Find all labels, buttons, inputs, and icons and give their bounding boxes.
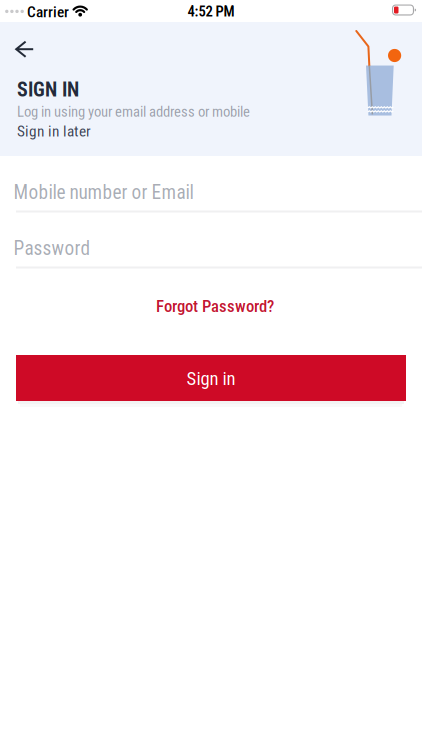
- staticText: Password: [13, 237, 90, 260]
- staticText: Sign in: [186, 368, 235, 389]
- button[interactable]: Sign in later: [17, 122, 91, 140]
- button[interactable]: Back: [3, 32, 37, 66]
- staticText: Forgot Password?: [156, 296, 274, 316]
- button[interactable]: Sign in: [16, 355, 406, 401]
- staticText: SIGN IN: [17, 78, 79, 101]
- button[interactable]: Forgot Password?: [156, 296, 274, 316]
- staticText: Mobile number or Email: [13, 181, 193, 204]
- staticText: Sign in later: [17, 122, 91, 140]
- staticText: 4:52 PM: [187, 3, 234, 20]
- staticText: Carrier: [27, 3, 69, 21]
- staticText: Log in using your email address or mobil…: [17, 103, 250, 120]
